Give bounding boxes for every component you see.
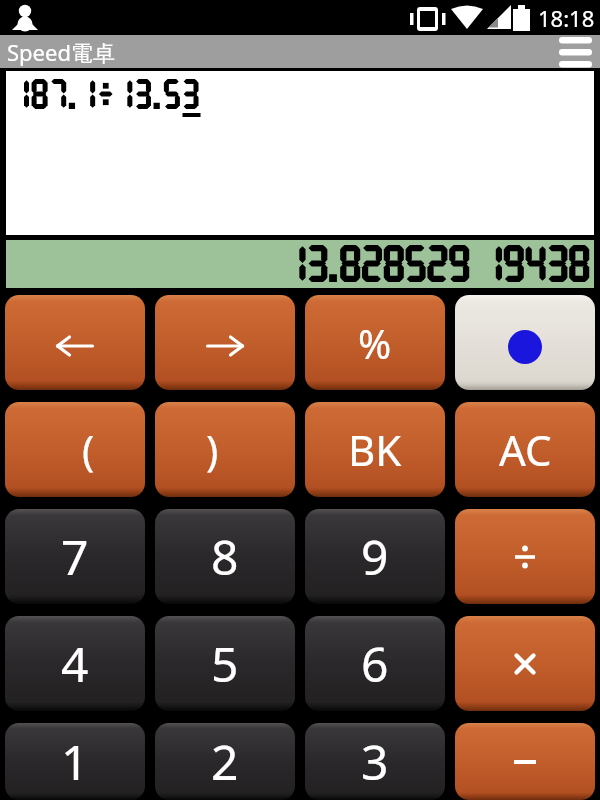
button[interactable]: (	[5, 402, 145, 497]
button[interactable]	[155, 295, 295, 390]
button[interactable]: 6	[305, 616, 445, 711]
button[interactable]: 2	[155, 723, 295, 800]
staticText: )	[206, 422, 219, 478]
button[interactable]: AC	[455, 402, 595, 497]
button[interactable]	[455, 616, 595, 711]
staticText: BK	[348, 421, 402, 478]
staticText: Speed電卓	[7, 37, 115, 67]
staticText: 4	[61, 631, 89, 696]
button[interactable]: 5	[155, 616, 295, 711]
button[interactable]: 7	[5, 509, 145, 604]
button[interactable]	[559, 36, 592, 67]
button[interactable]	[455, 723, 595, 800]
button[interactable]: 1	[5, 723, 145, 800]
staticText: %	[358, 316, 392, 370]
staticText: 6	[361, 631, 389, 696]
button[interactable]: BK	[305, 402, 445, 497]
button[interactable]: 9	[305, 509, 445, 604]
button[interactable]: 3	[305, 723, 445, 800]
staticText: (	[82, 422, 95, 478]
button[interactable]	[455, 295, 595, 390]
staticText: 7	[61, 524, 89, 589]
staticText: 8	[211, 524, 239, 589]
staticText: 9	[361, 524, 389, 589]
staticText: 5	[211, 631, 239, 696]
staticText: AC	[499, 421, 552, 478]
staticText: 1	[61, 729, 89, 794]
staticText: 18:18	[538, 3, 595, 33]
staticText: 2	[211, 729, 239, 794]
staticText: 3	[361, 729, 389, 794]
button[interactable]: %	[305, 295, 445, 390]
button[interactable]: 8	[155, 509, 295, 604]
button[interactable]: )	[155, 402, 295, 497]
button[interactable]	[455, 509, 595, 604]
button[interactable]: 4	[5, 616, 145, 711]
button[interactable]	[5, 295, 145, 390]
